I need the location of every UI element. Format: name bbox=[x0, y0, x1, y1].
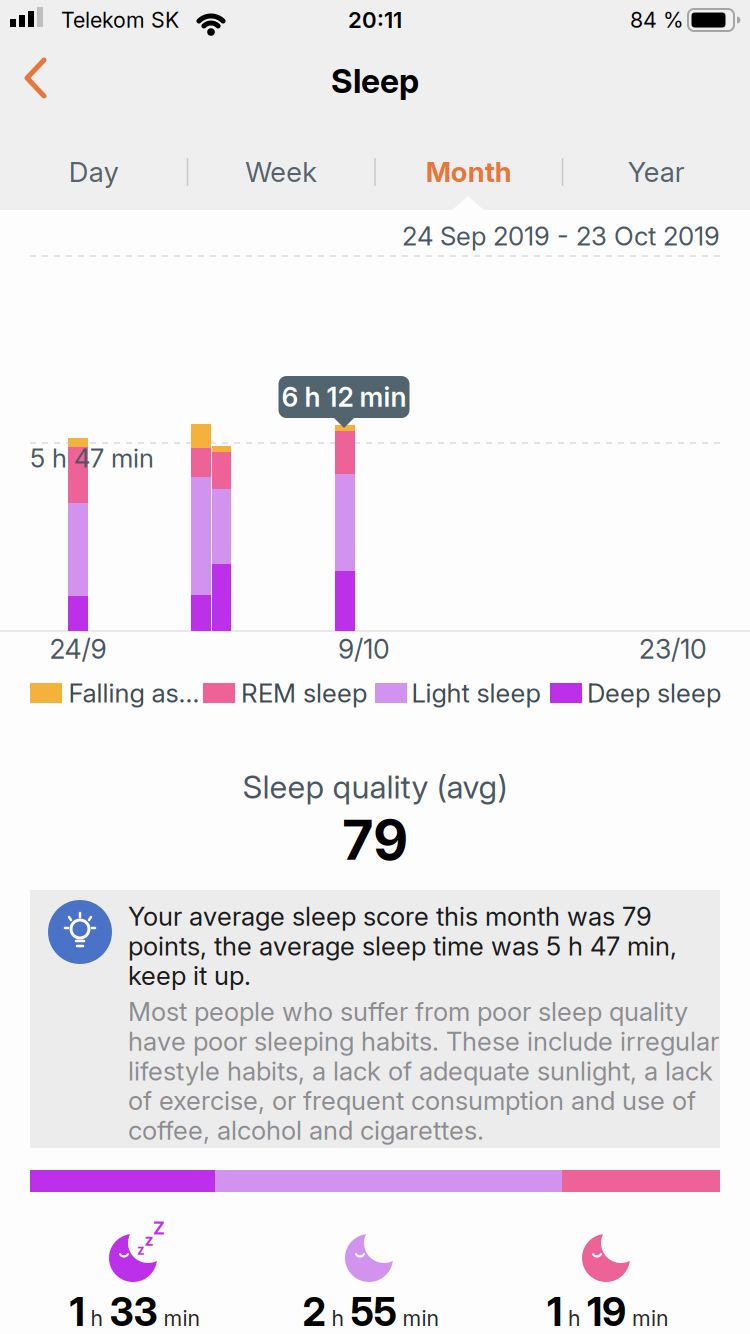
staticText: Z bbox=[153, 1218, 165, 1238]
staticText: 33 bbox=[109, 1290, 157, 1334]
staticText: Your average sleep score this month was … bbox=[128, 901, 677, 990]
staticText: h bbox=[568, 1306, 581, 1331]
staticText: Telekom SK bbox=[61, 8, 179, 32]
staticText: 24 Sep 2019 - 23 Oct 2019 bbox=[402, 221, 720, 251]
button[interactable]: Year bbox=[563, 140, 749, 204]
staticText: 79 bbox=[342, 809, 408, 871]
staticText: Sleep quality (avg) bbox=[242, 769, 507, 805]
button[interactable]: Month bbox=[376, 140, 562, 204]
staticText: 24/9 bbox=[49, 634, 106, 664]
staticText: Light sleep bbox=[411, 678, 540, 708]
button[interactable]: Day bbox=[1, 140, 187, 204]
staticText: 9/10 bbox=[338, 634, 390, 664]
staticText: Deep sleep bbox=[587, 678, 721, 708]
staticText: REM sleep bbox=[241, 678, 367, 708]
staticText: Year bbox=[628, 156, 685, 188]
staticText: 6 h 12 min bbox=[281, 382, 406, 412]
staticText: 19 bbox=[587, 1290, 626, 1334]
staticText: Week bbox=[245, 156, 317, 188]
staticText: min bbox=[632, 1306, 669, 1331]
staticText: 1 bbox=[547, 1290, 562, 1334]
staticText: Most people who suffer from poor sleep q… bbox=[128, 997, 719, 1145]
staticText: 55 bbox=[350, 1290, 396, 1334]
staticText: Month bbox=[426, 156, 512, 188]
staticText: 20:11 bbox=[348, 7, 402, 33]
staticText: z bbox=[137, 1242, 145, 1258]
staticText: Falling as... bbox=[68, 678, 199, 708]
staticText: h bbox=[331, 1306, 344, 1331]
staticText: 1 bbox=[69, 1290, 84, 1334]
staticText: 84 % bbox=[630, 8, 684, 32]
staticText: min bbox=[402, 1306, 439, 1331]
staticText: Sleep bbox=[331, 62, 419, 100]
staticText: Day bbox=[69, 156, 119, 188]
staticText: min bbox=[163, 1306, 200, 1331]
staticText: 2 bbox=[302, 1290, 325, 1334]
staticText: h bbox=[90, 1306, 103, 1331]
staticText: 5 h 47 min bbox=[30, 443, 154, 473]
staticText: 23/10 bbox=[639, 634, 707, 664]
staticText: z bbox=[144, 1231, 153, 1249]
button[interactable]: Back bbox=[6, 48, 66, 108]
button[interactable]: Week bbox=[188, 140, 374, 204]
